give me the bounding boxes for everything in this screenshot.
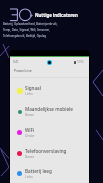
staticText: Links	[25, 175, 33, 179]
staticText: Temp, Data, Signaal, Wifi, Sensoren,	[3, 28, 50, 32]
staticText: Nuttige indicatoren	[35, 12, 78, 18]
staticText: Telefoonverslaving	[25, 148, 67, 154]
staticText: +	[30, 12, 34, 20]
staticText: Batterij leeg	[25, 168, 52, 174]
staticText: WiFi	[25, 127, 35, 133]
button[interactable]: Telefoonverslaving	[10, 143, 89, 164]
staticText: 100%	[77, 60, 84, 64]
staticText: Maandelijkse mobiele	[25, 106, 73, 112]
staticText: Boven	[25, 155, 35, 159]
staticText: Links	[25, 92, 33, 96]
staticText: Signaal	[25, 85, 41, 91]
button[interactable]: WiFi	[10, 122, 89, 143]
staticText: Batterij, Oplaadsnelheid, Batterijverbru…	[3, 22, 58, 26]
button[interactable]: Maandelijkse mobiele	[10, 101, 89, 122]
staticText: Telefoongebruik, Bedtijd, Opslag	[3, 34, 46, 38]
button[interactable]: Signaal	[10, 80, 89, 101]
staticText: 9:41	[13, 60, 19, 64]
staticText: Boven	[25, 113, 35, 117]
button[interactable]: Batterij leeg	[10, 164, 89, 183]
staticText: Onder	[25, 134, 35, 138]
staticText: PowerLine	[14, 68, 32, 73]
